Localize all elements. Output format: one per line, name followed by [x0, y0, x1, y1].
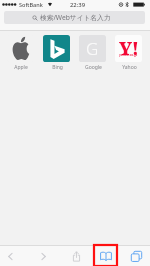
staticText: Bing: [52, 64, 63, 71]
button[interactable]: 検索/Webサイト名入力: [4, 11, 145, 24]
staticText: Google: [85, 64, 102, 71]
staticText: Yahoo: [122, 64, 137, 71]
button[interactable]: G: [79, 35, 106, 62]
button[interactable]: Tabs: [122, 246, 150, 266]
button[interactable]: Back: [0, 246, 24, 266]
button[interactable]: [7, 35, 34, 62]
staticText: 検索/Webサイト名入力: [40, 13, 111, 22]
staticText: G: [86, 37, 99, 60]
button[interactable]: Forward: [29, 246, 57, 266]
button[interactable]: [43, 35, 70, 62]
staticText: 22:39: [70, 1, 86, 9]
staticText: Y!: [119, 36, 139, 60]
button[interactable]: Bookmarks: [92, 246, 120, 266]
staticText: Apple: [14, 64, 28, 71]
button[interactable]: Share: [62, 246, 90, 266]
staticText: yahoo.co.jp: [119, 53, 138, 57]
button[interactable]: Y!: [115, 35, 142, 62]
staticText: SoftBank: [19, 1, 43, 8]
